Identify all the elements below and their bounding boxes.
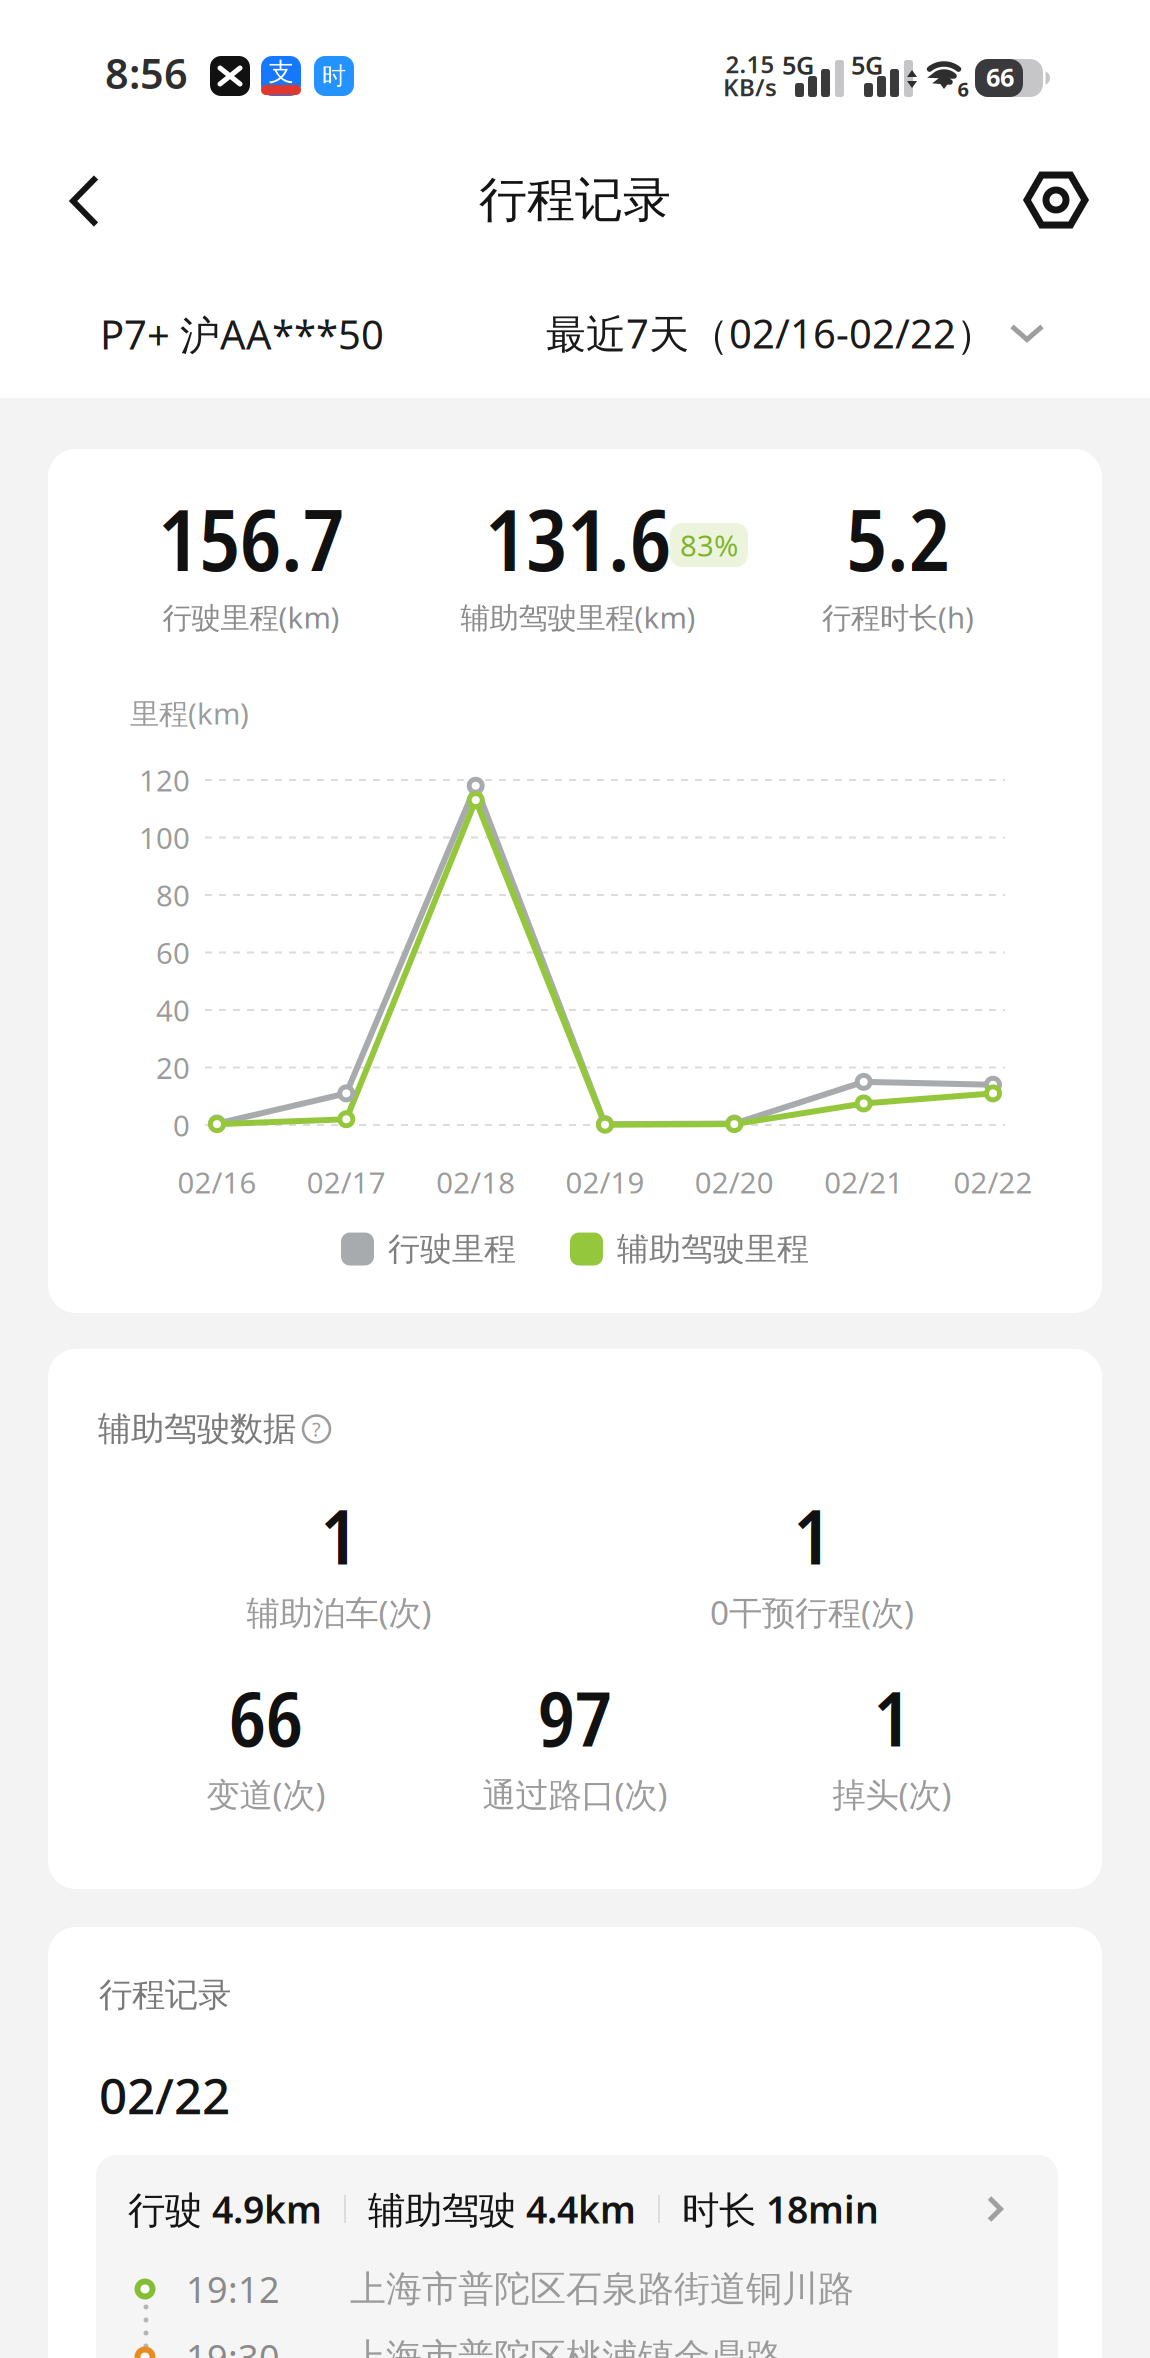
- staticText: 131.6: [485, 480, 671, 596]
- staticText: ?: [312, 1416, 321, 1442]
- staticText: 里程(km): [130, 693, 249, 732]
- staticText: 6: [957, 76, 968, 102]
- staticText: 2.15: [725, 48, 774, 80]
- staticText: 60: [156, 933, 190, 972]
- staticText: 行驶 4.9km: [128, 2184, 322, 2234]
- button[interactable]: Settings: [1017, 161, 1095, 239]
- staticText: 辅助驾驶里程: [617, 1229, 809, 1269]
- staticText: 97: [538, 1665, 612, 1769]
- staticText: 120: [139, 760, 190, 799]
- staticText: 辅助驾驶 4.4km: [368, 2184, 636, 2234]
- staticText: 20: [156, 1048, 190, 1087]
- staticText: 02/17: [307, 1162, 386, 1201]
- staticText: 行程记录: [99, 1974, 231, 2015]
- staticText: 行程时长(h): [822, 597, 974, 636]
- staticText: 02/22: [953, 1162, 1032, 1201]
- staticText: KB/s: [723, 71, 777, 103]
- staticText: 83%: [680, 525, 738, 564]
- staticText: 02/22: [99, 2062, 230, 2128]
- staticText: 02/18: [436, 1162, 515, 1201]
- button[interactable]: 行驶 4.9km: [96, 2155, 1058, 2358]
- staticText: 02/16: [177, 1162, 256, 1201]
- staticText: 0干预行程(次): [710, 1590, 914, 1634]
- staticText: 02/19: [565, 1162, 644, 1201]
- staticText: 上海市普陀区石泉路街道铜川路: [350, 2267, 854, 2311]
- staticText: 变道(次): [206, 1772, 325, 1816]
- staticText: 时: [322, 61, 346, 91]
- staticText: 辅助泊车(次): [246, 1590, 431, 1634]
- staticText: 时长 18min: [682, 2184, 879, 2234]
- staticText: 66: [986, 60, 1014, 94]
- staticText: 辅助驾驶里程(km): [460, 597, 695, 636]
- button[interactable]: 最近7天（02/16-02/22）: [546, 306, 1044, 359]
- staticText: 40: [156, 990, 190, 1029]
- staticText: 1: [320, 1483, 357, 1587]
- staticText: 5.2: [846, 480, 950, 596]
- button[interactable]: Help: [303, 1415, 330, 1442]
- staticText: 8:56: [105, 46, 188, 100]
- staticText: 19:30: [186, 2333, 280, 2358]
- staticText: 行驶里程: [388, 1229, 516, 1269]
- staticText: 100: [139, 818, 190, 857]
- staticText: 行程记录: [479, 170, 671, 229]
- staticText: 通过路口(次): [482, 1772, 667, 1816]
- staticText: 5G: [851, 48, 883, 82]
- staticText: 0: [173, 1105, 190, 1144]
- staticText: 最近7天（02/16-02/22）: [546, 306, 996, 359]
- staticText: 156.7: [158, 480, 344, 596]
- staticText: 66: [229, 1665, 303, 1769]
- staticText: 80: [156, 875, 190, 914]
- staticText: 1: [793, 1483, 830, 1587]
- staticText: 支: [268, 56, 293, 87]
- button[interactable]: Back: [56, 160, 114, 241]
- staticText: 1: [873, 1665, 910, 1769]
- staticText: 5G: [782, 48, 814, 82]
- staticText: 02/20: [695, 1162, 774, 1201]
- staticText: 上海市普陀区桃浦镇金鼎路: [350, 2335, 782, 2358]
- staticText: 19:12: [186, 2265, 280, 2313]
- staticText: P7+ 沪AA***50: [100, 307, 384, 361]
- staticText: 02/21: [824, 1162, 903, 1201]
- staticText: 掉头(次): [832, 1772, 951, 1816]
- staticText: 辅助驾驶数据: [98, 1408, 296, 1449]
- staticText: 行驶里程(km): [162, 597, 339, 636]
